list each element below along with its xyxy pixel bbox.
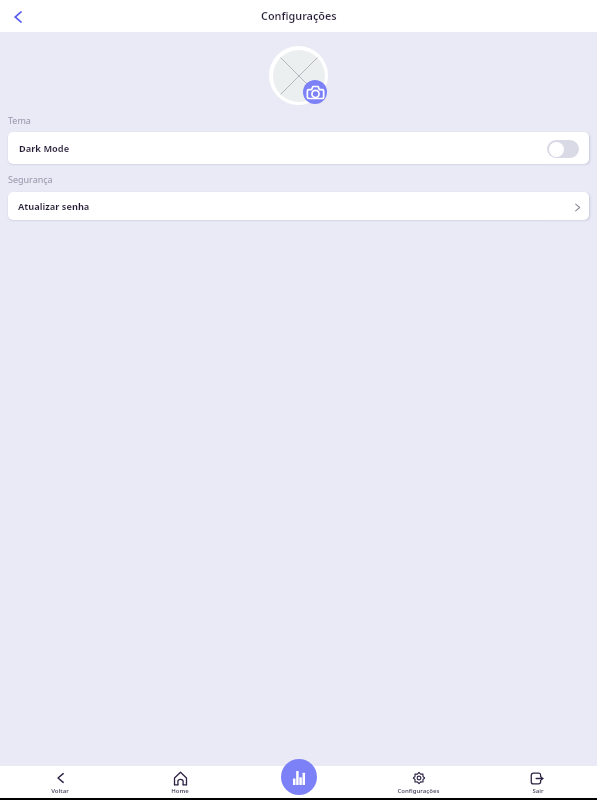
button[interactable]: Home [120, 766, 240, 798]
button[interactable]: Voltar [4, 3, 32, 31]
staticText: Sair [532, 787, 544, 795]
staticText: Dark Mode [19, 142, 70, 155]
button[interactable]: Estatísticas [281, 759, 317, 795]
button[interactable]: Dark Mode [8, 132, 589, 164]
staticText: Configurações [397, 787, 440, 795]
button[interactable]: Foto de perfil [273, 50, 325, 102]
button[interactable]: Voltar [0, 766, 120, 798]
staticText: Tema [8, 114, 31, 126]
staticText: Atualizar senha [18, 200, 90, 213]
button[interactable]: Dark Mode [547, 140, 579, 158]
button[interactable]: Configurações [359, 766, 478, 798]
staticText: Voltar [51, 787, 69, 795]
staticText: Configurações [261, 8, 337, 23]
button[interactable]: Atualizar senha [8, 192, 589, 220]
staticText: Home [171, 787, 189, 795]
button[interactable]: Alterar foto [303, 80, 327, 104]
button[interactable]: Sair [478, 766, 597, 798]
staticText: Segurança [8, 173, 53, 185]
